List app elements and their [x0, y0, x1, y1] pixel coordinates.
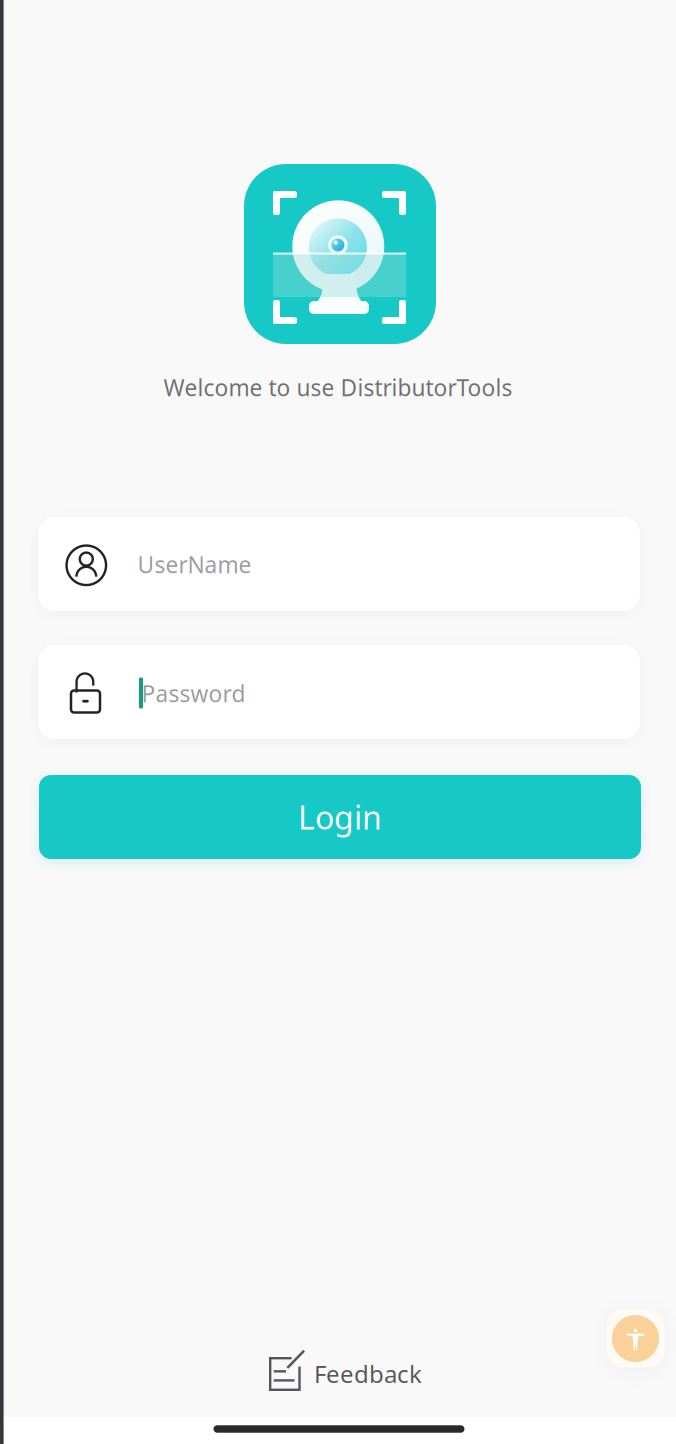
staticText: Password: [141, 678, 245, 708]
button[interactable]: UserName: [38, 517, 640, 611]
staticText: Login: [298, 796, 382, 838]
staticText: Feedback: [314, 1358, 422, 1390]
button[interactable]: Accessibility: [597, 1300, 673, 1376]
button[interactable]: Login: [39, 775, 641, 859]
button[interactable]: Password: [38, 645, 640, 739]
staticText: UserName: [137, 549, 251, 579]
staticText: Welcome to use DistributorTools: [163, 372, 512, 402]
button[interactable]: Feedback: [255, 1344, 435, 1404]
